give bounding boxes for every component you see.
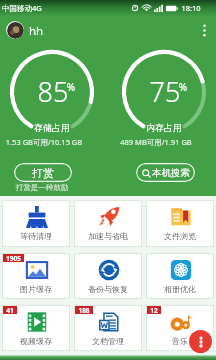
staticText: 文件浏览 bbox=[164, 231, 196, 241]
staticText: % bbox=[27, 80, 115, 94]
button[interactable]: More actions bbox=[189, 330, 212, 353]
staticText: 相册优化 bbox=[164, 284, 196, 294]
staticText: 文档管理 bbox=[92, 336, 124, 346]
staticText: 打赏是一种鼓励 bbox=[12, 183, 72, 192]
staticText: 85 bbox=[9, 73, 97, 110]
staticText: 188 bbox=[78, 306, 90, 314]
staticText: 489 MB可用/1.91 GB bbox=[112, 137, 200, 147]
staticText: 打赏 bbox=[32, 166, 54, 180]
button[interactable]: Overflow menu bbox=[194, 20, 214, 40]
staticText: 1.53 GB可用/10.15 GB bbox=[0, 137, 88, 147]
button[interactable]: 图片缓存 bbox=[2, 253, 70, 299]
button[interactable]: 音乐 bbox=[146, 305, 214, 351]
staticText: 41 bbox=[6, 306, 14, 314]
staticText: 中国移动4G bbox=[2, 3, 42, 13]
staticText: 75 bbox=[121, 73, 209, 110]
staticText: 视频缓存 bbox=[20, 336, 52, 346]
staticText: 存储占用 bbox=[8, 122, 96, 133]
staticText: 18:10 bbox=[181, 3, 201, 13]
button[interactable]: Profile bbox=[6, 21, 24, 39]
button[interactable]: 备份与恢复 bbox=[74, 253, 142, 299]
staticText: 加速与省电 bbox=[88, 231, 128, 241]
staticText: 音乐 bbox=[172, 336, 188, 346]
button[interactable]: 文档管理 bbox=[74, 305, 142, 351]
staticText: 1905 bbox=[6, 254, 21, 262]
button[interactable]: 等待清理 bbox=[2, 200, 70, 247]
button[interactable]: 打赏 bbox=[14, 163, 72, 182]
staticText: 本机搜索 bbox=[152, 167, 190, 179]
button[interactable]: 加速与省电 bbox=[74, 200, 142, 247]
button[interactable]: 相册优化 bbox=[146, 253, 214, 299]
button[interactable]: 视频缓存 bbox=[2, 305, 70, 351]
staticText: 内存占用 bbox=[120, 122, 208, 133]
staticText: 备份与恢复 bbox=[88, 284, 128, 294]
button[interactable]: 本机搜索 bbox=[136, 163, 195, 182]
button[interactable]: 文件浏览 bbox=[146, 200, 214, 247]
staticText: 等待清理 bbox=[20, 231, 52, 241]
staticText: 图片缓存 bbox=[20, 284, 52, 294]
staticText: 12 bbox=[150, 306, 158, 314]
staticText: hh bbox=[29, 23, 44, 39]
staticText: % bbox=[139, 80, 216, 94]
